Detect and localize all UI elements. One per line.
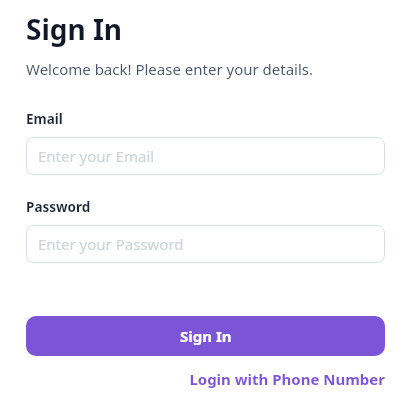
staticText: Sign In [180, 326, 232, 346]
staticText: Email [26, 110, 63, 128]
button[interactable]: Sign In [26, 316, 385, 356]
staticText: Enter your Password [38, 234, 184, 254]
button[interactable]: Enter your Email [26, 137, 385, 175]
staticText: Welcome back! Please enter your details. [26, 59, 314, 79]
button[interactable]: Login with Phone Number [189, 369, 385, 389]
button[interactable]: Enter your Password [26, 225, 385, 263]
staticText: Login with Phone Number [189, 369, 385, 389]
staticText: Password [26, 198, 91, 216]
staticText: Enter your Email [38, 146, 155, 166]
staticText: Sign In [26, 10, 123, 48]
